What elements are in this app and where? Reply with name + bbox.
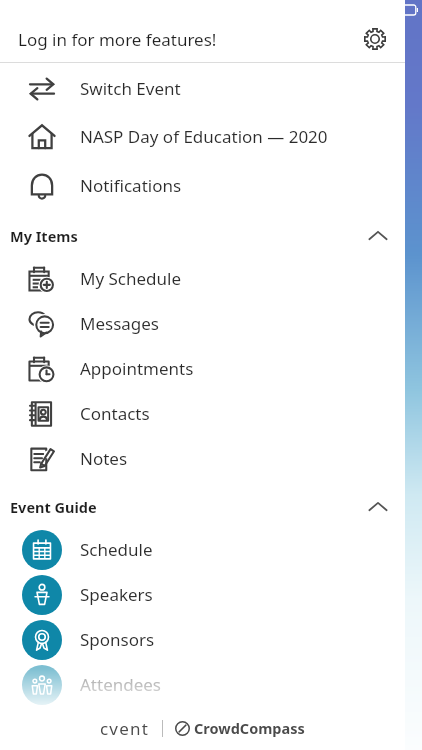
staticText: Contacts (80, 402, 150, 425)
staticText: CrowdCompass (194, 718, 305, 738)
staticText: Speakers (80, 583, 153, 606)
button[interactable]: Switch Event (0, 65, 405, 112)
button[interactable]: Sponsors (0, 617, 405, 662)
other: Collapse My Items (365, 223, 391, 249)
staticText: Attendees (80, 673, 162, 696)
staticText: Switch Event (80, 77, 181, 100)
staticText: NASP Day of Education — 2020 (80, 125, 328, 148)
staticText: My Schedule (80, 267, 182, 290)
staticText: My Items (10, 226, 78, 246)
staticText: Log in for more features! (18, 28, 217, 51)
button[interactable]: Attendees (0, 662, 405, 707)
button[interactable]: My Schedule (0, 256, 405, 301)
button[interactable]: My Items (0, 216, 405, 256)
button[interactable]: Log in for more features! (18, 28, 353, 51)
button[interactable]: Speakers (0, 572, 405, 617)
staticText: Event Guide (10, 497, 97, 517)
button[interactable]: Notifications (0, 161, 405, 210)
staticText: Notifications (80, 174, 182, 197)
staticText: Appointments (80, 357, 194, 380)
staticText: Notes (80, 447, 128, 470)
button[interactable]: Settings (353, 17, 397, 61)
button[interactable]: Event Guide (0, 487, 405, 527)
staticText: cvent (100, 717, 150, 740)
button[interactable]: Notes (0, 436, 405, 481)
staticText: Messages (80, 312, 160, 335)
button[interactable]: Schedule (0, 527, 405, 572)
button[interactable]: Messages (0, 301, 405, 346)
button[interactable]: NASP Day of Education — 2020 (0, 112, 405, 161)
staticText: Sponsors (80, 628, 155, 651)
button[interactable]: Appointments (0, 346, 405, 391)
staticText: Schedule (80, 538, 153, 561)
other: Collapse Event Guide (365, 494, 391, 520)
button[interactable]: Contacts (0, 391, 405, 436)
